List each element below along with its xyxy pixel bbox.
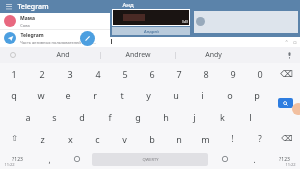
staticText: ▫	[293, 39, 297, 45]
button[interactable]: Search	[244, 1, 255, 12]
button[interactable]: d	[68, 106, 96, 128]
staticText: 0:49	[182, 20, 188, 24]
staticText: Андрей	[144, 29, 159, 34]
button[interactable]: ⇧	[0, 128, 28, 149]
button[interactable]: x	[56, 128, 84, 149]
button[interactable]: !	[219, 128, 246, 149]
staticText: Andrew	[125, 50, 151, 60]
staticText: u	[173, 89, 179, 101]
button[interactable]: 7	[165, 63, 192, 84]
staticText: 2	[39, 68, 45, 80]
button[interactable]: ,	[34, 149, 64, 169]
button[interactable]: m	[192, 128, 219, 149]
staticText: Andy	[205, 50, 222, 60]
staticText: k	[220, 111, 225, 123]
button[interactable]: ⌫	[273, 63, 300, 84]
button[interactable]: z	[28, 128, 56, 149]
staticText: l	[249, 111, 252, 123]
button[interactable]: e	[54, 84, 81, 106]
staticText: 1	[11, 68, 17, 80]
button[interactable]: 5	[111, 63, 138, 84]
button[interactable]: Search	[278, 98, 293, 108]
button[interactable]: New message	[80, 31, 95, 46]
staticText: m	[201, 133, 210, 145]
staticText: 3	[67, 68, 73, 80]
staticText: 7	[176, 68, 182, 80]
button[interactable]: 0:49	[113, 10, 189, 25]
button[interactable]: Andrew	[101, 47, 175, 63]
button[interactable]: Expand suggestions	[0, 47, 26, 63]
button[interactable]: Emoji	[64, 149, 90, 169]
button[interactable]: g	[124, 106, 152, 128]
staticText: Часть активных пользователей Telegr…	[20, 40, 96, 45]
button[interactable]: t	[108, 84, 135, 106]
button[interactable]: b	[138, 128, 165, 149]
button[interactable]: n	[165, 128, 192, 149]
staticText: j	[193, 111, 196, 123]
button[interactable]: r	[81, 84, 108, 106]
button[interactable]: Telegram	[0, 30, 300, 46]
button[interactable]: Andy	[176, 47, 250, 63]
staticText: Сова	[20, 23, 30, 28]
button[interactable]: ⌫	[273, 128, 300, 149]
staticText: 11:22	[285, 162, 296, 167]
button[interactable]: More	[263, 1, 274, 12]
staticText: ⌃	[284, 39, 289, 45]
button[interactable]: 4	[84, 63, 111, 84]
staticText: y	[146, 89, 151, 101]
staticText: 9	[230, 68, 236, 80]
button[interactable]: y	[135, 84, 162, 106]
button[interactable]: Мама	[0, 13, 300, 29]
button[interactable]: s	[41, 106, 68, 128]
button[interactable]: ?	[246, 128, 273, 149]
button[interactable]: .	[240, 149, 268, 169]
staticText: .	[253, 154, 256, 165]
button[interactable]: Menu	[4, 2, 13, 11]
staticText: f	[108, 111, 112, 123]
button[interactable]: And	[26, 47, 100, 63]
staticText: w	[37, 89, 45, 101]
button[interactable]: 1	[0, 63, 28, 84]
button[interactable]: 3	[56, 63, 84, 84]
button[interactable]: ?123	[268, 149, 300, 169]
staticText: ⌫	[281, 134, 293, 143]
staticText: q	[11, 89, 17, 101]
button[interactable]: a	[14, 106, 41, 128]
button[interactable]: w	[27, 84, 54, 106]
button[interactable]: v	[111, 128, 138, 149]
button[interactable]: u	[162, 84, 189, 106]
button[interactable]: 8	[192, 63, 219, 84]
button[interactable]: o	[216, 84, 243, 106]
button[interactable]: l	[236, 106, 264, 128]
button[interactable]: q	[0, 84, 27, 106]
button[interactable]: Play	[196, 17, 205, 26]
button[interactable]: QWERTY	[92, 153, 208, 166]
staticText: c	[95, 133, 100, 145]
button[interactable]: i	[189, 84, 216, 106]
button[interactable]: Андрей	[112, 27, 190, 35]
staticText: ?123	[279, 156, 290, 163]
staticText: Мама	[20, 15, 35, 22]
staticText: Анд	[122, 1, 134, 9]
button[interactable]: h	[152, 106, 180, 128]
staticText: o	[227, 89, 233, 101]
button[interactable]: Voice input	[278, 47, 300, 63]
button[interactable]: c	[84, 128, 111, 149]
button[interactable]: 6	[138, 63, 165, 84]
button[interactable]: 9	[219, 63, 246, 84]
staticText: ,	[48, 154, 51, 165]
button[interactable]: p	[243, 84, 270, 106]
button[interactable]: Change language	[210, 149, 240, 169]
button[interactable]: 2	[28, 63, 56, 84]
button[interactable]: f	[96, 106, 124, 128]
button[interactable]: j	[180, 106, 208, 128]
staticText: Telegram	[20, 32, 44, 39]
staticText: ?123	[12, 156, 23, 163]
button[interactable]: k	[208, 106, 236, 128]
button[interactable]: ?123	[0, 149, 34, 169]
button[interactable]: 0	[246, 63, 273, 84]
staticText: 0	[257, 68, 263, 80]
